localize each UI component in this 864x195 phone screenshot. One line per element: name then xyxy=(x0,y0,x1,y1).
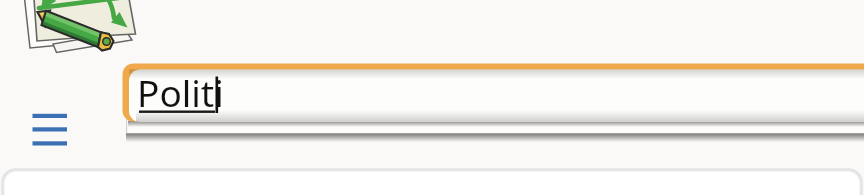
staticText: Politi xyxy=(137,67,224,117)
button[interactable]: Menu xyxy=(24,105,76,155)
button[interactable] xyxy=(128,69,864,121)
